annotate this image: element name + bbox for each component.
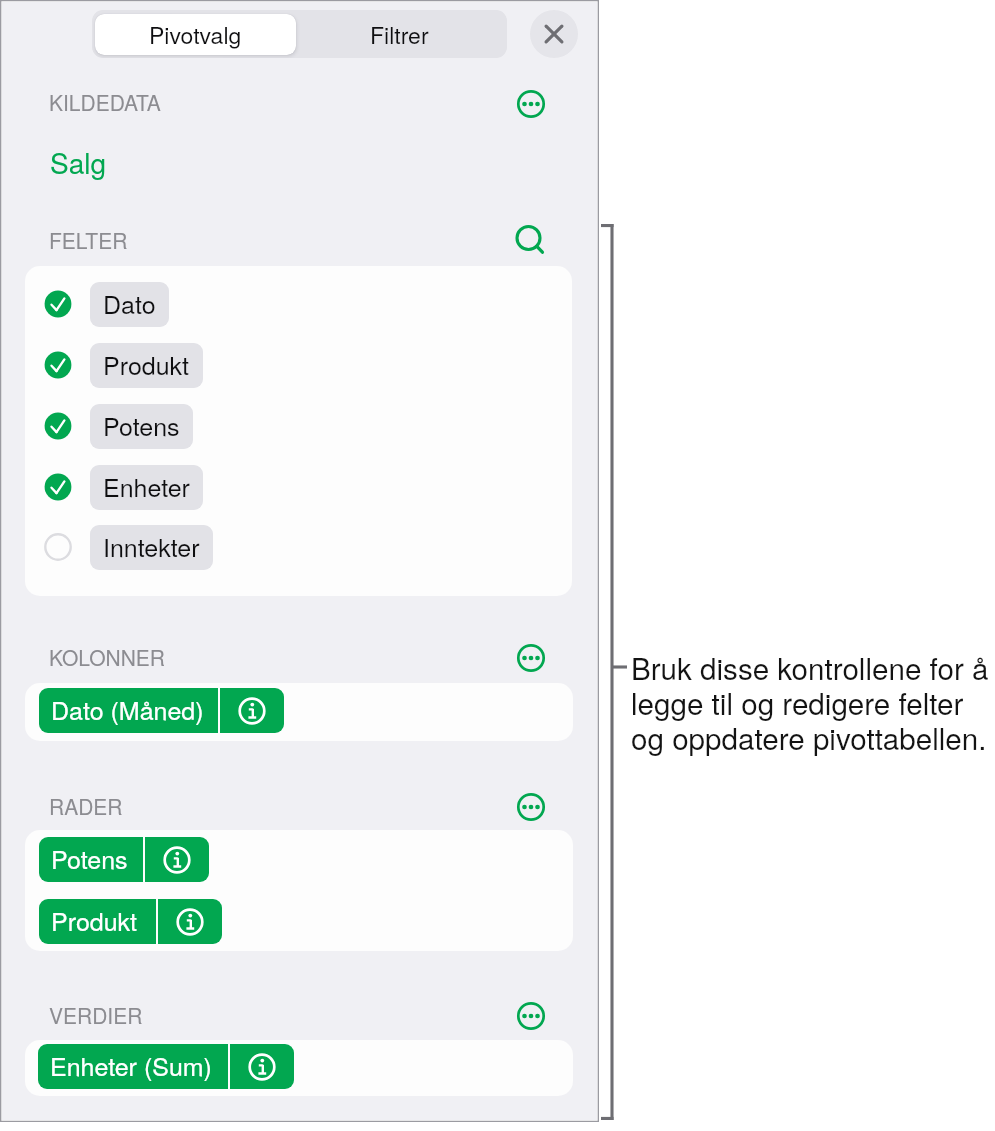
staticText: Pivotvalg <box>149 18 242 51</box>
button[interactable]: Produkt <box>39 899 222 944</box>
button[interactable]: Lukk <box>530 10 578 58</box>
button[interactable]: Potens <box>39 837 209 882</box>
button[interactable]: Pivotvalg <box>95 14 296 55</box>
staticText: RADER <box>49 791 123 821</box>
button[interactable]: Dato <box>25 279 572 329</box>
staticText: Potens <box>103 407 180 443</box>
button[interactable]: Inntekter <box>25 522 572 572</box>
button[interactable]: Enheter (Sum) <box>38 1044 294 1089</box>
staticText: VERDIER <box>49 1000 143 1030</box>
staticText: Enheter (Sum) <box>50 1047 212 1083</box>
staticText: Dato (Måned) <box>51 691 204 727</box>
button[interactable]: Mer <box>510 637 552 679</box>
staticText: Dato <box>103 285 156 321</box>
staticText: KOLONNER <box>49 642 165 672</box>
button[interactable]: Dato (Måned) <box>39 688 284 733</box>
staticText: Filtrer <box>370 18 429 51</box>
staticText: Produkt <box>103 346 190 382</box>
staticText: Produkt <box>51 902 138 938</box>
button[interactable]: Enheter <box>25 462 572 512</box>
button[interactable]: Potens <box>25 401 572 451</box>
staticText: Bruk disse kontrollene for å legge til o… <box>631 646 995 758</box>
staticText: Enheter <box>103 468 190 504</box>
staticText: Salg <box>50 142 107 182</box>
staticText: Inntekter <box>103 528 200 564</box>
button[interactable]: Filtrer <box>296 14 503 55</box>
button[interactable]: Søk <box>508 218 550 260</box>
button[interactable]: Mer <box>510 83 552 125</box>
button[interactable]: Mer <box>510 995 552 1037</box>
staticText: Potens <box>51 840 128 876</box>
button[interactable]: Produkt <box>25 340 572 390</box>
staticText: FELTER <box>49 225 128 255</box>
staticText: KILDEDATA <box>49 87 161 117</box>
button[interactable]: Mer <box>510 786 552 828</box>
